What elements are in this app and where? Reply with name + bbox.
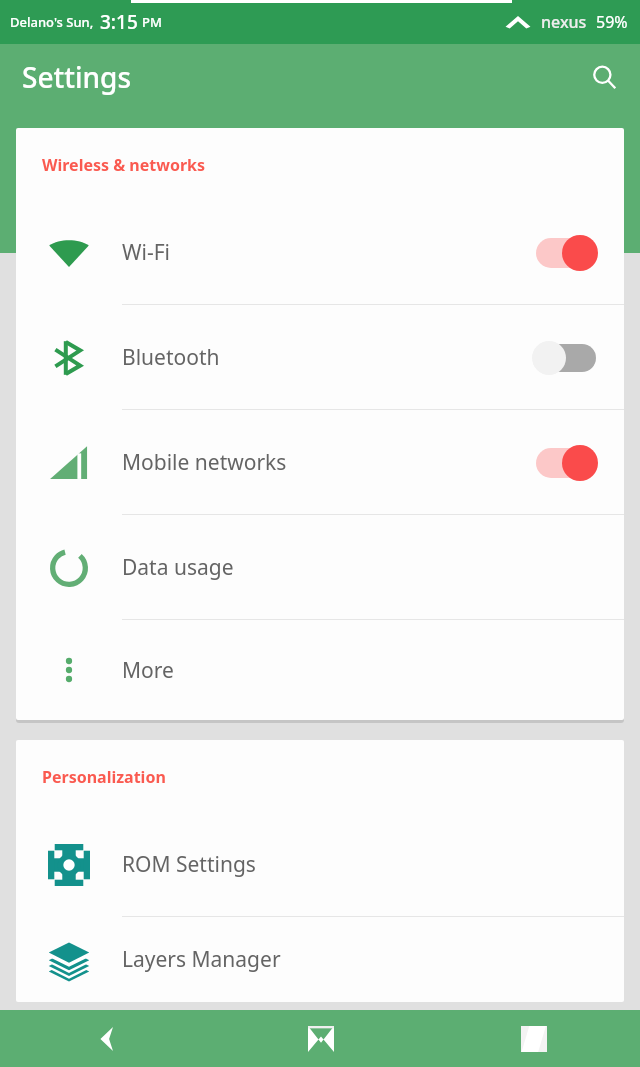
button[interactable]: Mobile networks (16, 410, 624, 515)
button[interactable]: Search (580, 53, 628, 101)
staticText: Layers Manager (122, 945, 600, 974)
staticText: More (122, 656, 600, 685)
button[interactable]: Data usage (16, 515, 624, 620)
staticText: PM (142, 13, 162, 31)
staticText: Settings (22, 58, 132, 96)
staticText: nexus (541, 11, 587, 33)
button[interactable] (530, 338, 600, 378)
button[interactable]: Wi-Fi (16, 200, 624, 305)
staticText: Data usage (122, 553, 600, 582)
staticText: 3:15 (100, 9, 138, 35)
staticText: Wi-Fi (122, 238, 530, 267)
staticText: Personalization (42, 766, 166, 788)
staticText: 59% (596, 11, 628, 33)
button[interactable]: Recent apps (427, 1010, 640, 1067)
button[interactable]: Back (0, 1010, 214, 1067)
staticText: Delano's Sun, (10, 13, 94, 31)
staticText: ROM Settings (122, 850, 600, 879)
staticText: Bluetooth (122, 343, 530, 372)
button[interactable] (530, 443, 600, 483)
button[interactable] (530, 233, 600, 273)
button[interactable]: Layers Manager (16, 917, 624, 1002)
button[interactable]: Bluetooth (16, 305, 624, 410)
staticText: Wireless & networks (42, 154, 206, 176)
staticText: Mobile networks (122, 448, 530, 477)
button[interactable]: Home (214, 1010, 427, 1067)
button[interactable]: ROM Settings (16, 812, 624, 917)
button[interactable]: More (16, 620, 624, 720)
